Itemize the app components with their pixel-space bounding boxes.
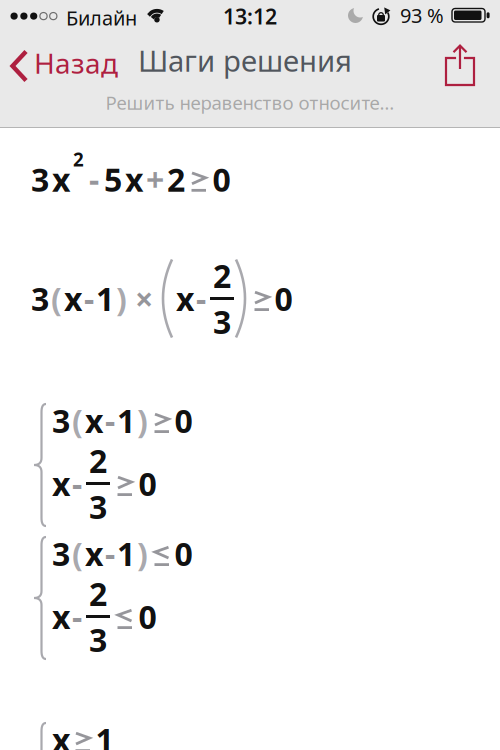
staticText: 2 [167,158,185,200]
staticText: 3 [31,277,49,320]
staticText: Назад [34,44,118,82]
staticText: + [146,158,164,200]
staticText: 1 [95,718,113,750]
staticText: 2 [213,254,231,297]
staticText: Шаги решения [138,41,352,80]
staticText: 0 [174,399,192,442]
staticText: 3 [89,485,107,528]
button[interactable]: Share [435,43,485,87]
staticText: 93 % [400,2,444,29]
staticText: 0 [138,462,156,505]
staticText: ( [51,277,62,320]
staticText: - [72,462,82,505]
staticText: - [72,595,82,638]
staticText: ) [116,277,127,320]
staticText: x [176,277,194,320]
staticText: 3 [89,618,107,661]
staticText: ) [137,399,148,442]
staticText: - [105,399,115,442]
staticText: × [135,277,153,320]
staticText: 3 [52,532,70,575]
staticText: x [52,158,70,200]
staticText: 2 [89,439,107,482]
staticText: x [85,399,103,442]
staticText: 0 [274,277,292,320]
staticText: x [52,595,70,638]
staticText: 0 [212,158,230,200]
staticText: ( [72,399,83,442]
staticText: 1 [96,277,114,320]
staticText: - [89,158,99,200]
staticText: x [85,532,103,575]
staticText: - [105,532,115,575]
staticText: 0 [138,595,156,638]
staticText: ( [72,532,83,575]
staticText: Решить неравенство относите… [105,90,394,115]
staticText: x [125,158,143,200]
staticText: ) [137,532,148,575]
staticText: 3 [52,399,70,442]
staticText: Билайн [66,4,137,31]
staticText: - [84,277,94,320]
staticText: x [64,277,82,320]
staticText: - [196,277,206,320]
staticText: 2 [89,572,107,615]
staticText: 3 [31,158,49,200]
staticText: 0 [174,532,192,575]
staticText: 3 [213,300,231,343]
staticText: 5 [104,158,122,200]
staticText: 1 [117,532,135,575]
button[interactable]: Назад [0,43,118,83]
staticText: x [52,462,70,505]
staticText: x [52,718,70,750]
staticText: 2 [73,147,84,172]
staticText: 13:12 [223,2,277,30]
staticText: 1 [117,399,135,442]
